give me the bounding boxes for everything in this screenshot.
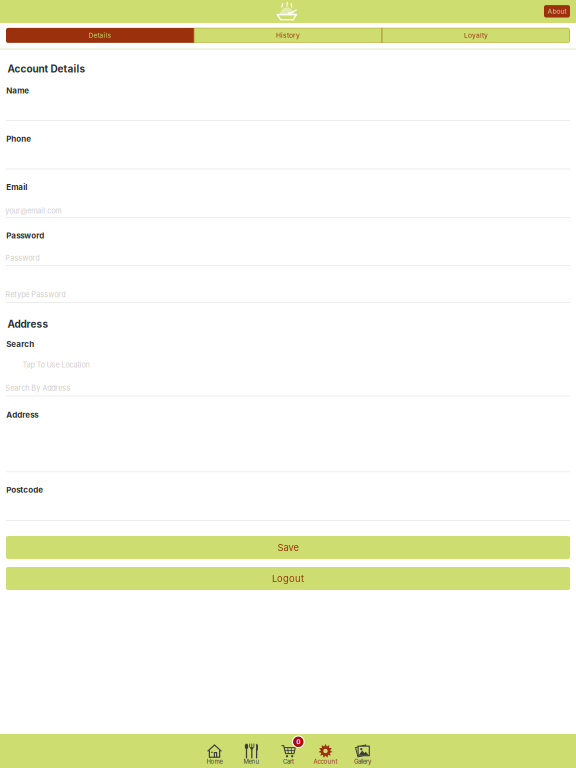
staticText: Name [6, 86, 29, 95]
staticText: Search By Address [5, 384, 70, 393]
button[interactable]: Details [6, 28, 194, 43]
staticText: Postcode [6, 485, 43, 495]
button[interactable]: Logout [6, 567, 570, 590]
button[interactable]: Gallery [344, 735, 381, 768]
staticText: Menu [243, 758, 259, 765]
staticText: History [276, 31, 300, 39]
staticText: Tap To Use Location [22, 360, 89, 369]
staticText: Password [6, 231, 44, 240]
staticText: Password [5, 254, 39, 262]
button[interactable]: About [544, 5, 570, 17]
button[interactable]: History [194, 28, 382, 43]
staticText: Details [88, 31, 111, 39]
staticText: Retype Password [5, 290, 65, 299]
staticText: Address [6, 410, 38, 420]
staticText: Address [7, 318, 48, 330]
button[interactable]: Tap To Use Location [22, 358, 182, 372]
staticText: Phone [6, 134, 31, 144]
staticText: Save [277, 542, 298, 553]
staticText: Loyalty [464, 31, 488, 39]
staticText: Search [6, 339, 34, 349]
button[interactable]: Loyalty [382, 28, 570, 43]
button[interactable]: Save [6, 536, 570, 559]
staticText: Gallery [354, 758, 371, 765]
staticText: Email [6, 182, 27, 192]
staticText: Logout [272, 573, 304, 584]
button[interactable]: Account [307, 735, 344, 768]
staticText: your@email.com [5, 206, 61, 215]
staticText: 0 [296, 738, 300, 746]
staticText: Home [206, 758, 222, 765]
staticText: Account [313, 758, 337, 765]
button[interactable]: Menu [233, 735, 270, 768]
button[interactable]: Cart [270, 735, 307, 768]
staticText: Cart [283, 758, 294, 765]
staticText: About [547, 7, 566, 15]
button[interactable]: Home [196, 735, 233, 768]
staticText: Account Details [7, 63, 85, 75]
